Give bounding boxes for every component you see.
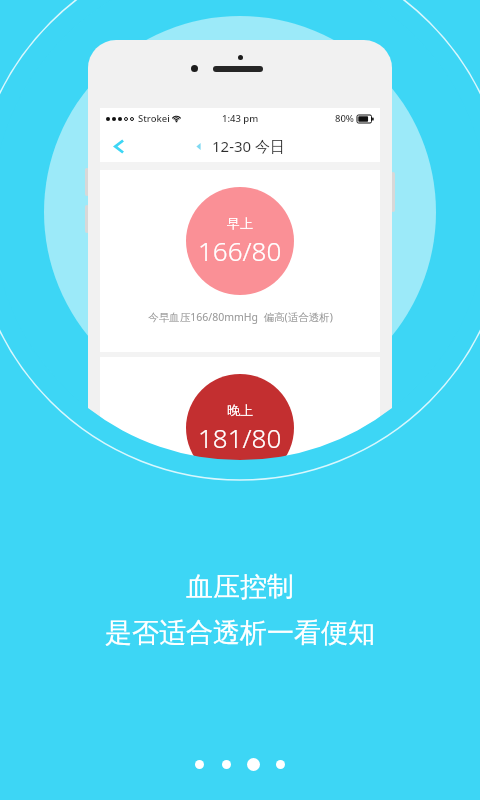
button[interactable]: Current page (247, 758, 260, 771)
button[interactable]: Page (195, 760, 204, 769)
button[interactable]: Back (104, 131, 134, 161)
staticText: 80% (335, 112, 354, 125)
button[interactable]: Page (222, 760, 231, 769)
staticText: 12-30 今日 (212, 136, 286, 156)
staticText: 181/80 (198, 420, 282, 455)
button[interactable]: 12-30 今日 (195, 136, 286, 156)
staticText: 166/80 (198, 233, 282, 268)
button[interactable]: Page (276, 760, 285, 769)
staticText: 早上 (227, 215, 253, 231)
button[interactable]: 早上 (100, 170, 380, 352)
staticText: 晚上 (227, 402, 253, 418)
staticText: 1:43 pm (222, 112, 259, 125)
staticText: 血压控制 (186, 570, 294, 604)
staticText: 是否适合透析一看便知 (105, 616, 375, 650)
button[interactable]: 晚上 (100, 357, 380, 539)
staticText: Strokei (138, 112, 170, 125)
staticText: 今早血压166/80mmHg 偏高(适合透析) (148, 310, 333, 324)
